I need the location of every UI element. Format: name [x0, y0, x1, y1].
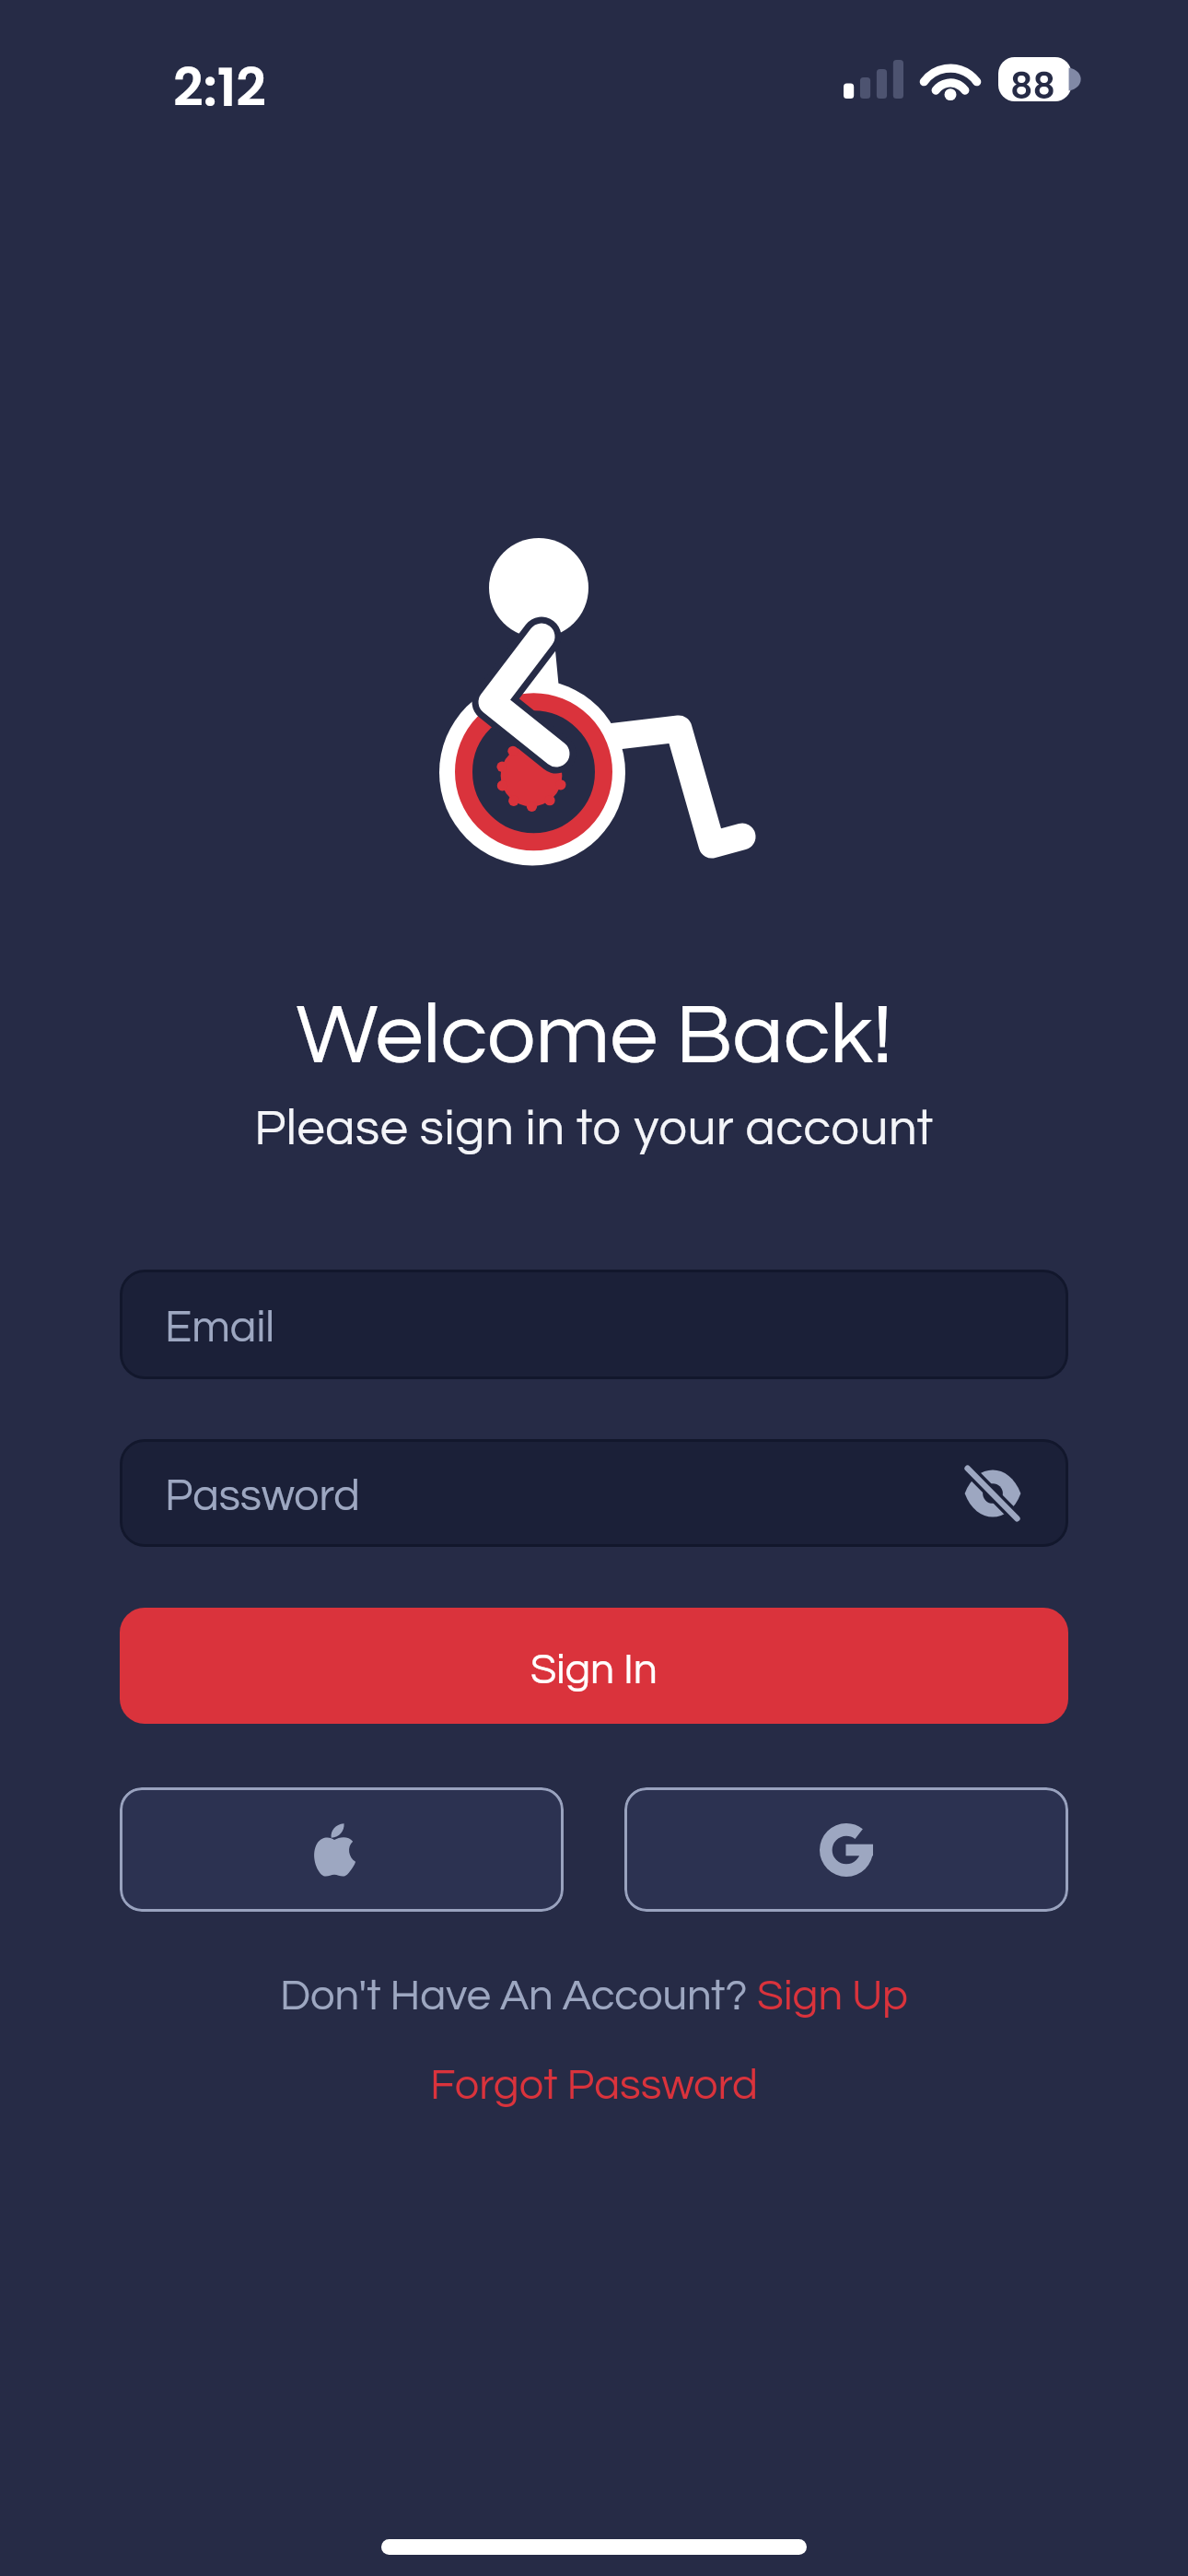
- button[interactable]: Password: [120, 1439, 1068, 1547]
- staticText: Forgot Password: [430, 2063, 759, 2107]
- staticText: Sign Up: [757, 1973, 908, 2018]
- button[interactable]: Show password: [954, 1455, 1031, 1532]
- button[interactable]: Continue with Google: [624, 1787, 1068, 1912]
- button[interactable]: Sign Up: [757, 1973, 908, 2018]
- button[interactable]: Forgot Password: [430, 2063, 759, 2107]
- button[interactable]: Email: [120, 1270, 1068, 1379]
- staticText: Welcome Back!: [296, 992, 892, 1081]
- staticText: Email: [165, 1306, 275, 1351]
- staticText: Don't Have An Account?: [280, 1973, 757, 2018]
- staticText: Sign In: [530, 1648, 658, 1692]
- staticText: Password: [165, 1474, 360, 1519]
- staticText: 2:12: [173, 51, 267, 124]
- button[interactable]: Continue with Apple: [120, 1787, 564, 1912]
- staticText: 88: [1010, 62, 1055, 106]
- button[interactable]: Sign In: [120, 1608, 1068, 1724]
- staticText: Please sign in to your account: [254, 1104, 934, 1155]
